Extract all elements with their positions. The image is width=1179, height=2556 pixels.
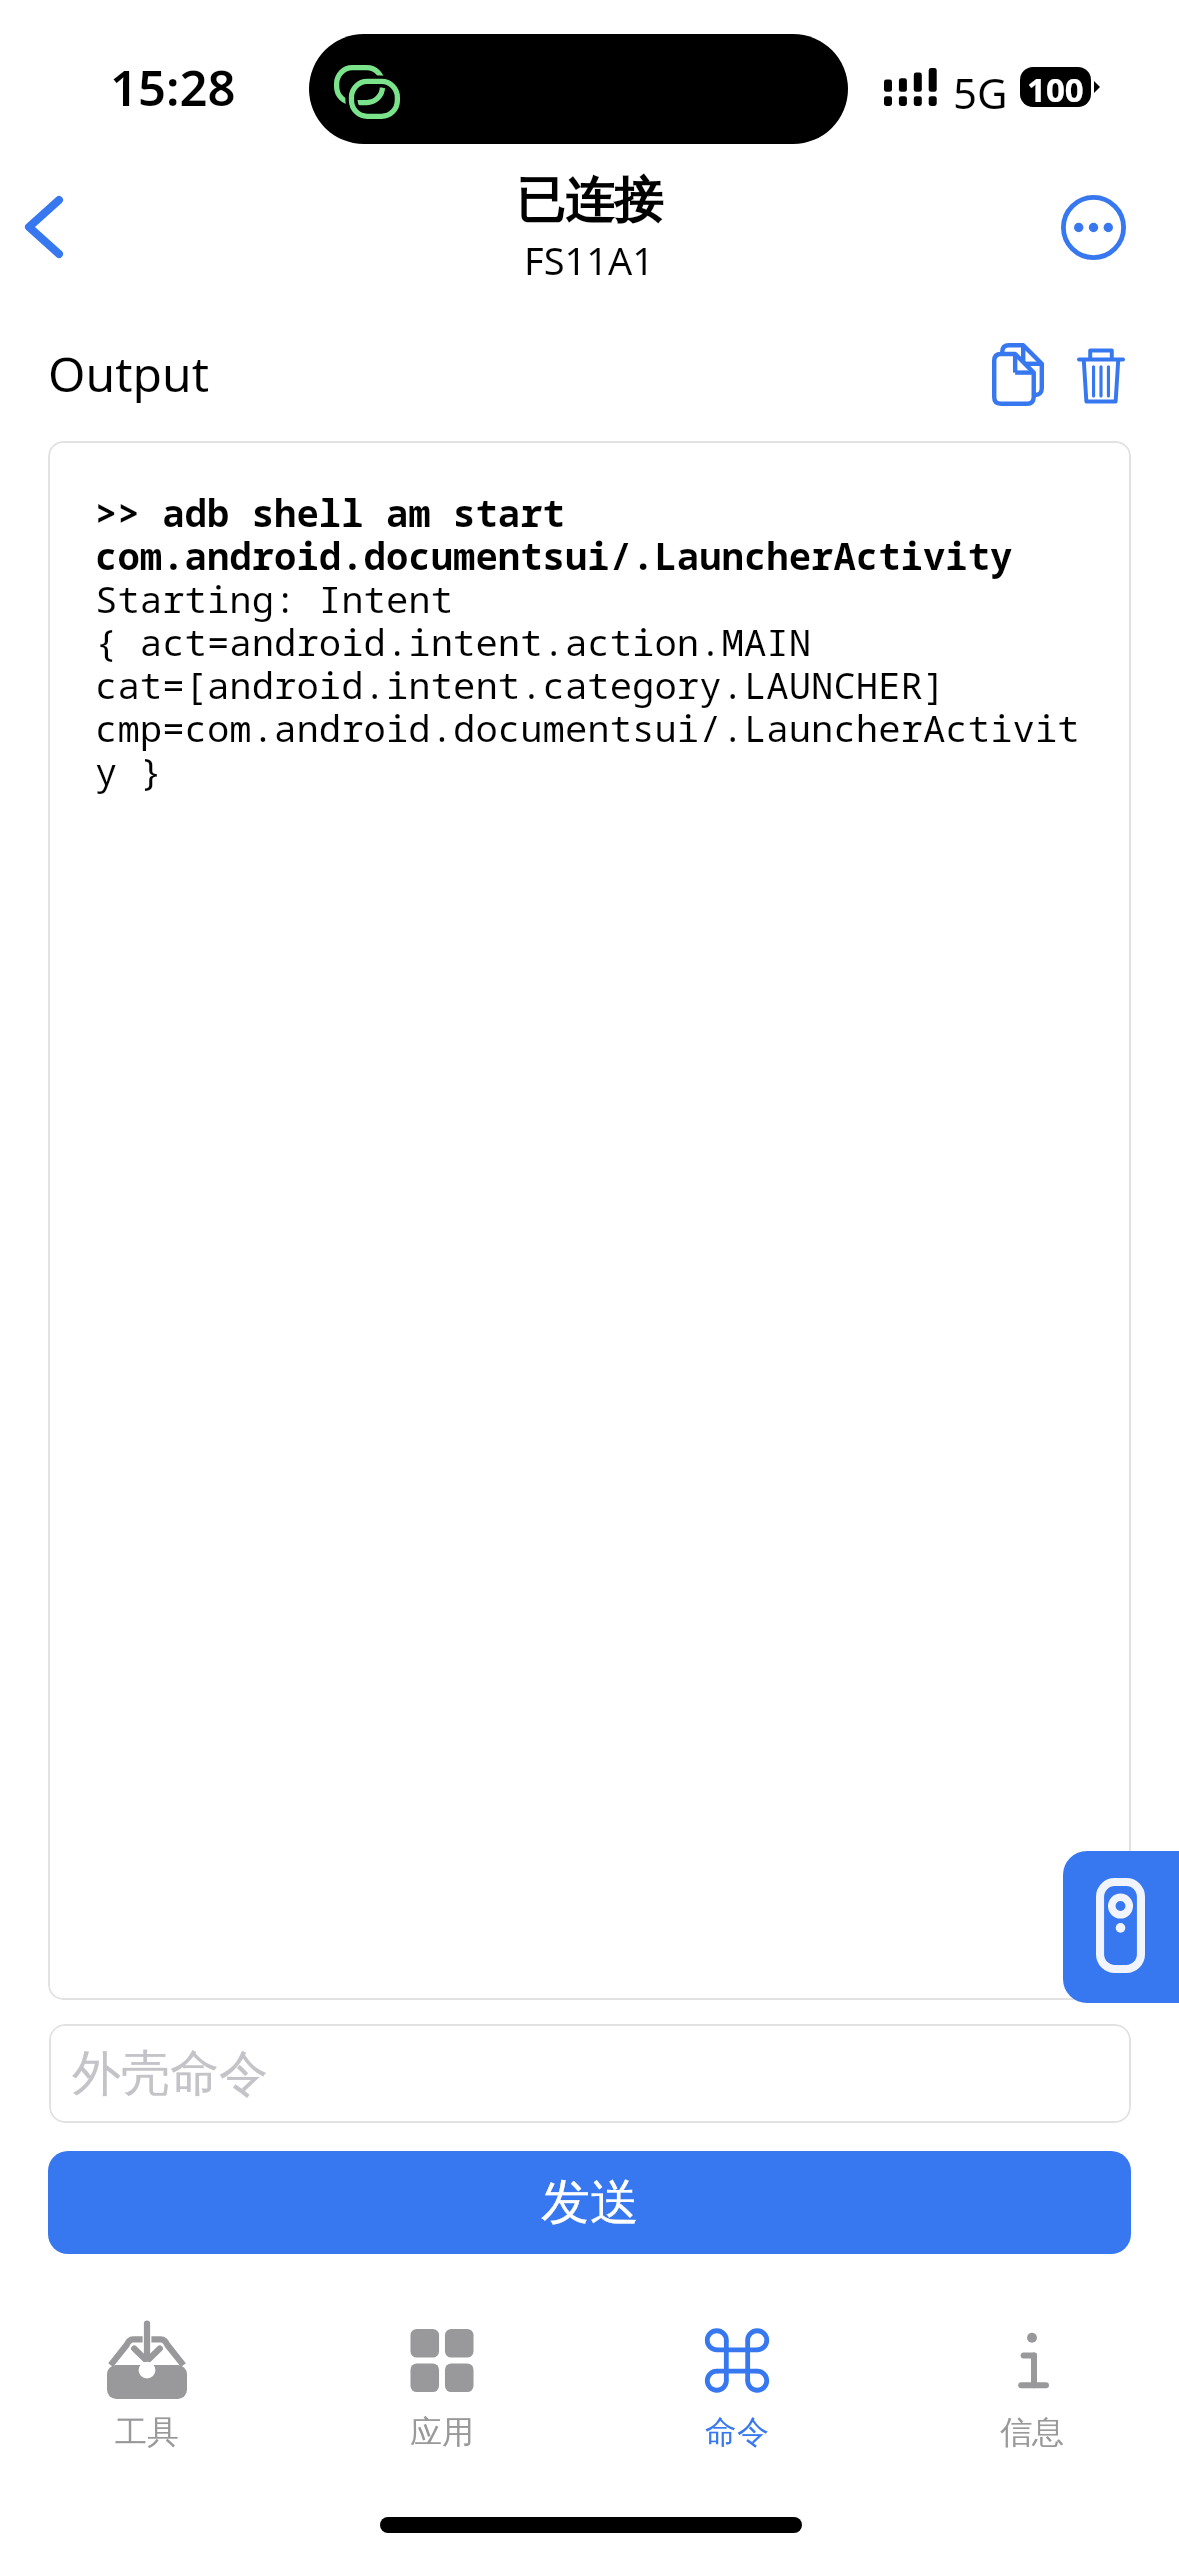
button[interactable]: 发送	[48, 2151, 1131, 2254]
staticText: 外壳命令	[72, 2043, 268, 2105]
staticText: Output	[48, 341, 209, 406]
button[interactable]: More options	[1045, 179, 1141, 275]
staticText: 应用	[410, 2412, 474, 2452]
staticText: 100	[1027, 67, 1084, 107]
staticText: 信息	[1000, 2412, 1064, 2452]
staticText: 5G	[953, 64, 1008, 121]
button[interactable]: 命令	[589, 2312, 884, 2452]
button[interactable]: 应用	[294, 2312, 589, 2452]
button[interactable]: Back	[0, 177, 100, 277]
staticText: 命令	[705, 2412, 769, 2452]
button[interactable]: Copy	[973, 330, 1063, 420]
staticText: >> adb shell am start com.android.docume…	[95, 493, 1013, 579]
staticText: 工具	[115, 2412, 179, 2452]
staticText: 发送	[541, 2172, 639, 2234]
button[interactable]: 信息	[884, 2312, 1179, 2452]
staticText: FS11A1	[524, 234, 655, 286]
button[interactable]: 外壳命令	[49, 2024, 1131, 2123]
staticText: Starting: Intent { act=android.intent.ac…	[95, 579, 1080, 794]
button[interactable]: Remote control	[1063, 1851, 1179, 2003]
staticText: 已连接	[516, 170, 663, 232]
staticText: 15:28	[110, 54, 236, 121]
button[interactable]: 工具	[0, 2312, 294, 2452]
button[interactable]: Clear	[1057, 330, 1147, 420]
